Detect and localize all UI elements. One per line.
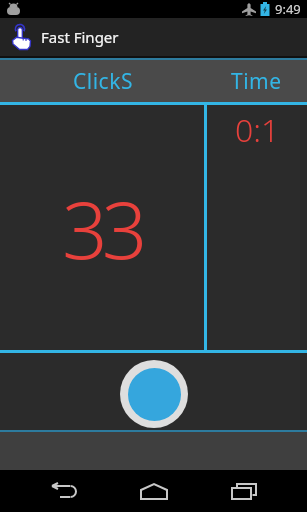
button[interactable] (114, 470, 194, 512)
staticText: Fast Finger (41, 27, 119, 47)
button[interactable] (120, 360, 188, 428)
button[interactable] (204, 470, 284, 512)
staticText: 9:49 (275, 0, 301, 18)
staticText: 33 (62, 173, 142, 282)
staticText: ClickS (73, 67, 133, 96)
staticText: Time (231, 67, 282, 96)
button[interactable] (23, 470, 103, 512)
staticText: 0:1 (235, 108, 280, 152)
button[interactable]: Time (205, 60, 307, 102)
button[interactable]: ClickS (0, 60, 205, 102)
